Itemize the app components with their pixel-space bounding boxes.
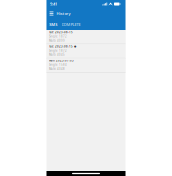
staticText: COMPLETE xyxy=(62,22,81,27)
staticText: 9:41 xyxy=(50,1,57,7)
staticText: SMS xyxy=(49,22,57,27)
staticText: Mon 2023-07-03 xyxy=(49,59,74,62)
staticText: Tue 2023-08-15 xyxy=(49,45,73,48)
button[interactable]: Menu xyxy=(49,8,53,19)
staticText: Multi 4348 xyxy=(49,67,65,71)
staticText: Multi 4045 xyxy=(49,53,65,56)
button[interactable]: Tue 2023-08-15 xyxy=(46,30,125,44)
staticText: Single 1872 xyxy=(49,49,67,52)
staticText: Tue 2023-08-15 xyxy=(49,30,73,34)
staticText: History xyxy=(56,11,70,16)
staticText: Single 1584 xyxy=(49,63,67,66)
staticText: Single 1872 xyxy=(49,35,67,38)
staticText: Multi 4099 xyxy=(49,39,65,42)
staticText: ● xyxy=(74,45,76,48)
button[interactable]: Mon 2023-07-03 xyxy=(46,58,125,73)
button[interactable]: COMPLETE xyxy=(59,19,83,30)
button[interactable]: Tue 2023-08-15 xyxy=(46,44,125,58)
button[interactable]: SMS xyxy=(47,19,59,30)
